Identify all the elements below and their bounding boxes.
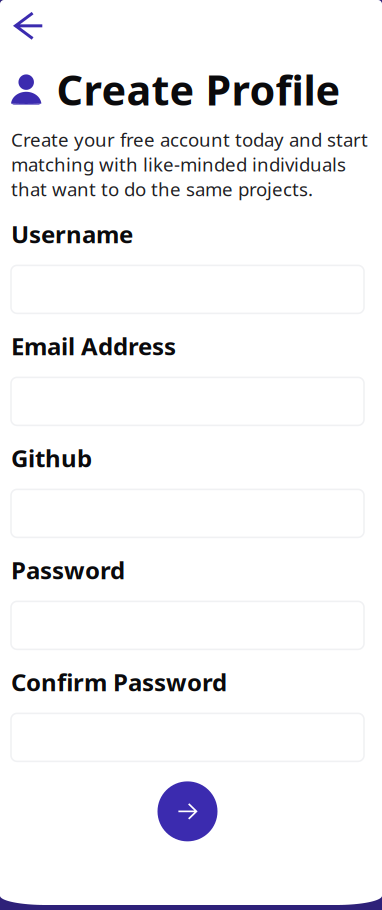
- staticText: Username: [11, 218, 133, 250]
- staticText: Email Address: [11, 330, 176, 362]
- staticText: Github: [11, 442, 92, 474]
- button[interactable]: Back: [11, 0, 58, 40]
- staticText: Password: [11, 554, 125, 586]
- staticText: Confirm Password: [11, 666, 227, 698]
- staticText: Create Profile: [56, 62, 340, 117]
- staticText: Create your free account today and start…: [11, 127, 368, 201]
- button[interactable]: Continue: [157, 781, 217, 841]
